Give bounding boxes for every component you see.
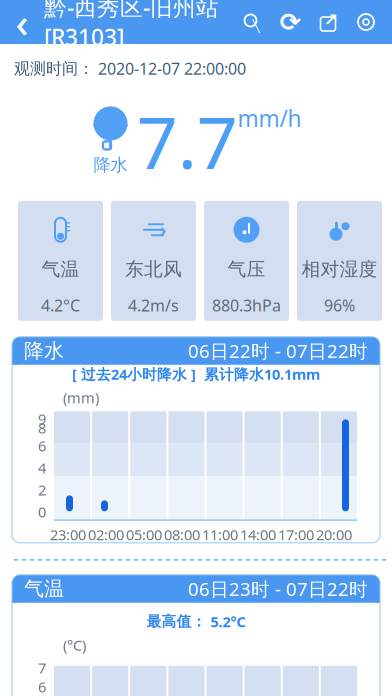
staticText: 8 [38,418,46,438]
staticText: 02:00 [88,525,124,544]
staticText: › [160,218,166,241]
staticText: 相对湿度 [301,258,377,281]
staticText: (°C) [63,635,86,655]
staticText: 降水 [93,154,127,176]
staticText: 06日23时 - 07日22时 [188,576,368,601]
staticText: 气压 [227,258,265,281]
staticText: (mm) [63,388,99,407]
staticText: [ 过去24小时降水 ] [72,364,196,384]
button[interactable]: 气温 [18,201,103,321]
staticText: 9 [38,409,46,429]
staticText: 气温 [41,258,79,281]
staticText: 最高值： [146,613,206,631]
staticText: 5.2°C [206,612,245,631]
staticText: 6 [38,677,46,696]
staticText: 观测时间： [14,59,94,78]
staticText: 11:00 [202,525,238,544]
button[interactable]: Settings [354,10,378,34]
staticText: 累计降水10.1mm [196,364,320,384]
button[interactable]: 气压 [204,201,289,321]
staticText: 4.2°C [41,295,80,316]
button[interactable]: › [111,201,196,321]
staticText: 4.2m/s [128,295,179,316]
button[interactable]: Share [316,10,340,34]
staticText: ‹ [15,0,28,48]
staticText: 东北风 [125,258,182,281]
staticText: 14:00 [240,525,276,544]
staticText: 降水 [24,339,64,363]
staticText: 08:00 [164,525,200,544]
staticText: 4 [38,458,46,478]
staticText: 96% [324,295,355,316]
staticText: 2 [38,480,46,500]
button[interactable]: Back [0,0,44,44]
staticText: 气温 [24,577,64,601]
staticText: 0 [38,502,46,522]
staticText: 17:00 [278,525,314,544]
staticText: 黔-西秀区-旧州站[R3103] [44,0,219,52]
button[interactable]: Search [240,10,264,34]
staticText: 6 [38,436,46,456]
staticText: 7.7 [136,93,237,189]
staticText: 880.3hPa [212,295,281,316]
staticText: 06日22时 - 07日22时 [188,338,368,363]
button[interactable]: 相对湿度 [297,201,382,321]
staticText: ╲ [252,19,259,33]
staticText: 05:00 [126,525,162,544]
staticText: mm/h [237,103,301,133]
staticText: 2020-12-07 22:00:00 [94,58,246,79]
staticText: ↗ [323,10,338,29]
button[interactable]: Refresh [278,10,302,34]
staticText: 7 [38,658,46,678]
staticText: ⟳ [279,8,300,36]
staticText: 20:00 [316,525,352,544]
staticText: 23:00 [50,525,86,544]
